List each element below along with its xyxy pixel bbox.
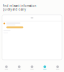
button[interactable]: Search <box>13 63 26 72</box>
button[interactable]: Saved <box>26 63 38 72</box>
button[interactable]: Home <box>0 63 13 72</box>
button[interactable]: Activity <box>38 63 51 72</box>
button[interactable]: Profile <box>51 63 64 72</box>
staticText: Find relevant information quickly and ea… <box>3 4 37 11</box>
